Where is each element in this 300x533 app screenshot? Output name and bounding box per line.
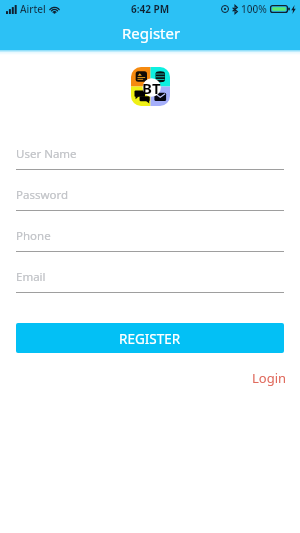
staticText: 6:42 PM [131, 2, 170, 16]
staticText: Register [122, 23, 181, 43]
button[interactable]: Login [252, 369, 287, 387]
staticText: User Name [16, 146, 77, 162]
button[interactable]: Password [16, 170, 284, 211]
button[interactable]: Email [16, 252, 284, 293]
staticText: Airtel [20, 2, 46, 16]
staticText: REGISTER [119, 330, 181, 348]
button[interactable]: REGISTER [16, 323, 284, 353]
staticText: 100% [241, 2, 267, 16]
button[interactable]: User Name [16, 129, 284, 170]
button[interactable]: Phone [16, 211, 284, 252]
staticText: Password [16, 187, 69, 203]
staticText: Email [16, 269, 46, 285]
staticText: Login [252, 369, 287, 387]
staticText: BT [142, 78, 161, 98]
staticText: Phone [16, 228, 51, 244]
